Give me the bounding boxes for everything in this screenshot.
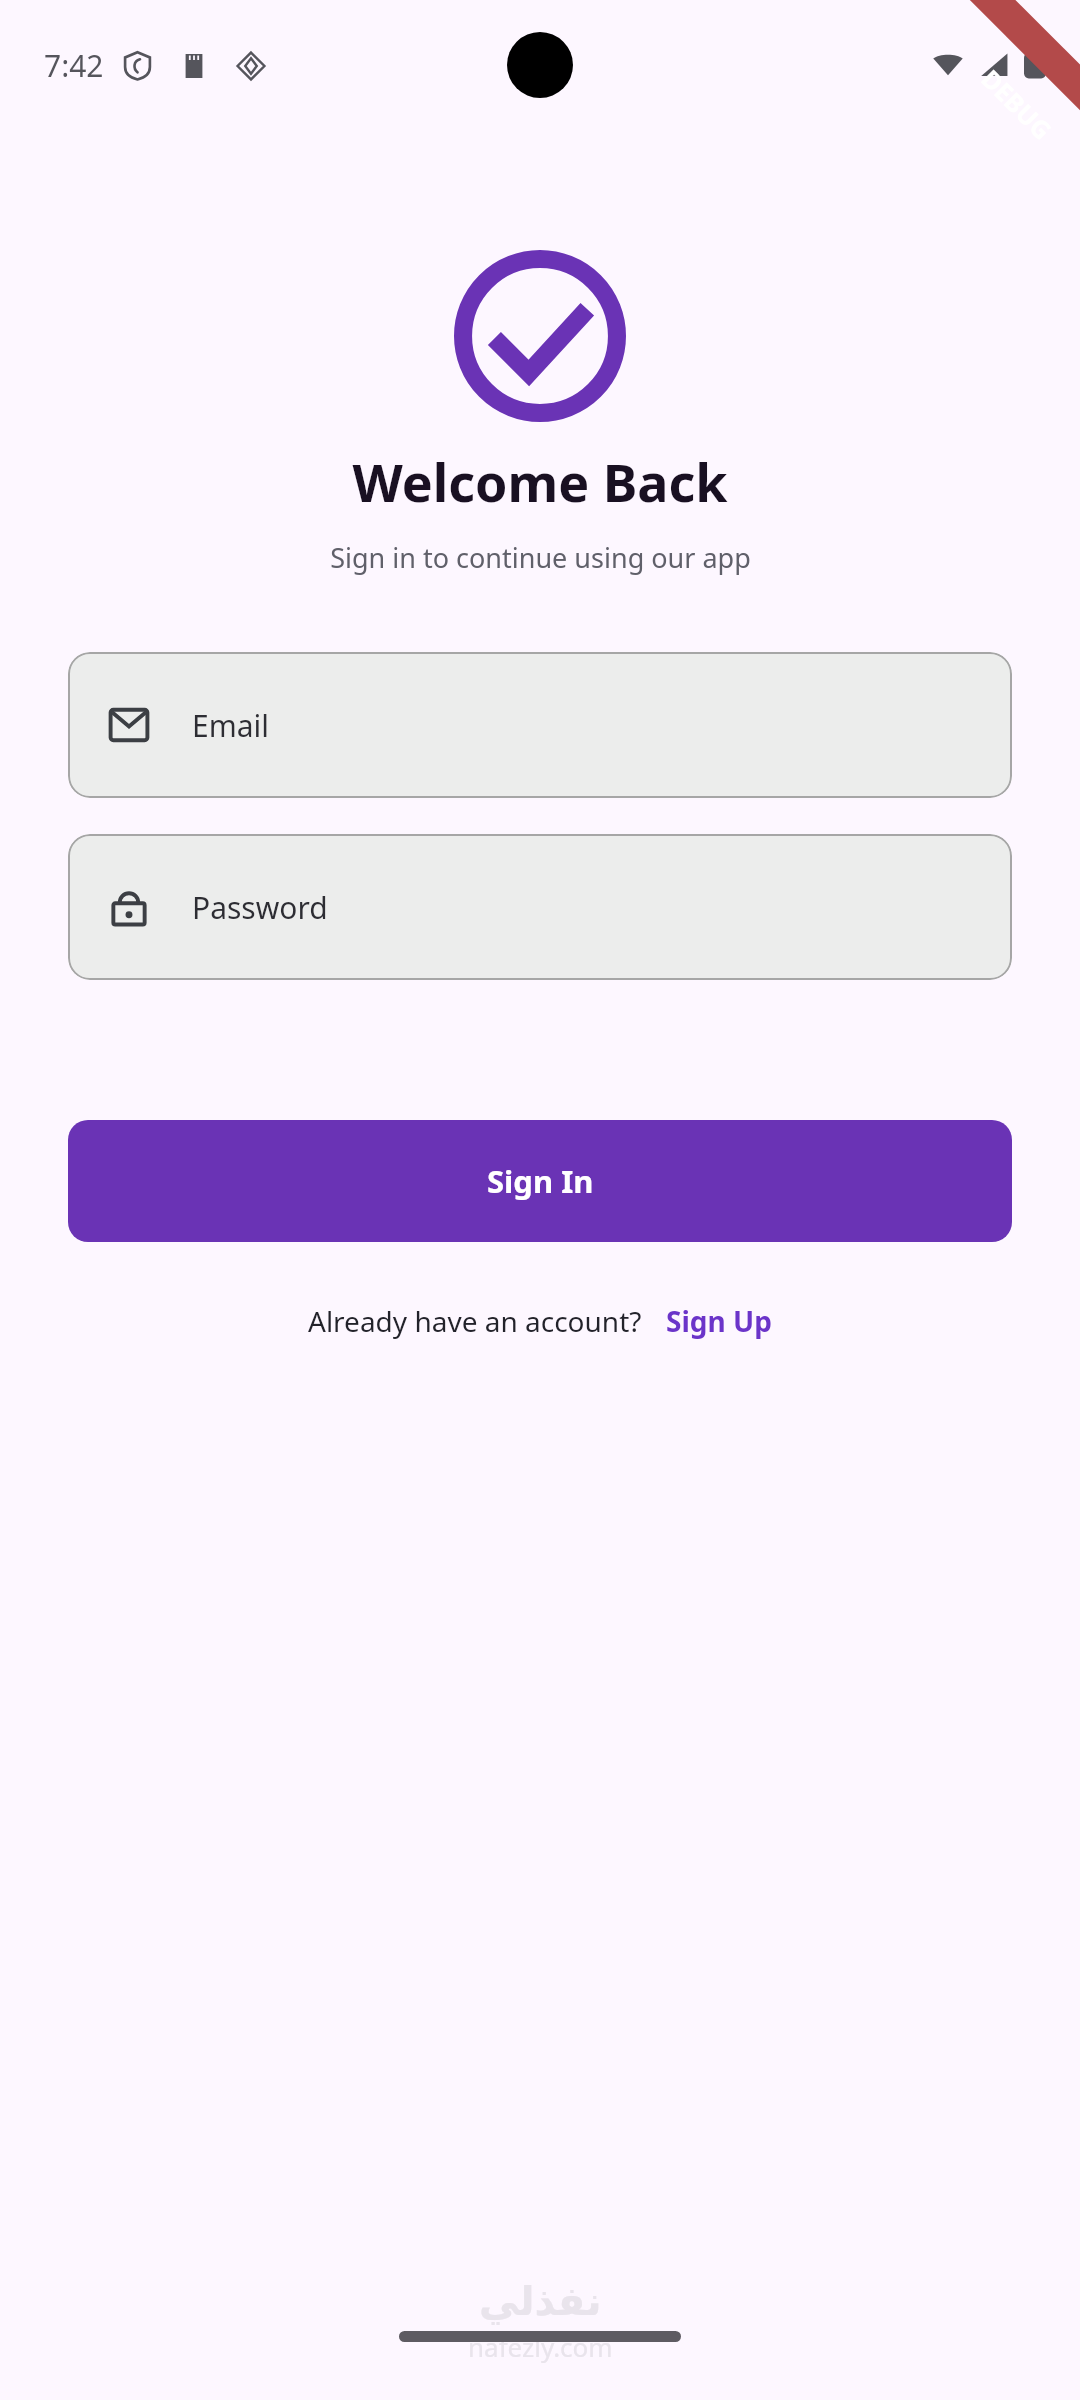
staticText: DEBUG: [975, 62, 1059, 146]
staticText: Email: [192, 705, 270, 746]
staticText: nafezly.com: [468, 2329, 613, 2364]
staticText: Password: [192, 887, 328, 928]
button[interactable]: Password: [68, 834, 1012, 980]
staticText: نفذلي: [479, 2278, 602, 2325]
staticText: Sign In: [487, 1160, 594, 1202]
staticText: Already have an account?: [308, 1302, 642, 1340]
button[interactable]: Sign In: [68, 1120, 1012, 1242]
staticText: Welcome Back: [352, 446, 728, 517]
staticText: Sign in to continue using our app: [330, 539, 751, 576]
staticText: 7:42: [44, 45, 104, 86]
button[interactable]: Email: [68, 652, 1012, 798]
button[interactable]: Sign Up: [666, 1302, 772, 1340]
staticText: Sign Up: [666, 1302, 772, 1340]
